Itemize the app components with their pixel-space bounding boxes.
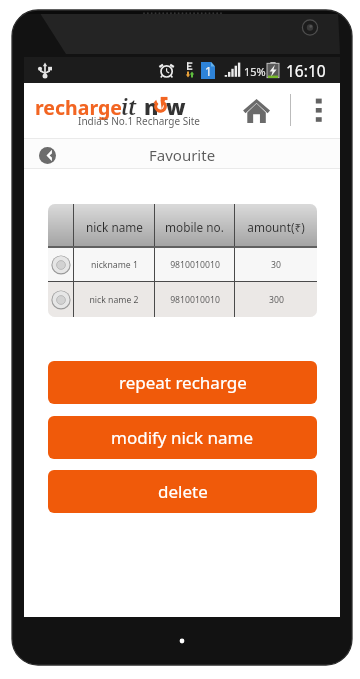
button[interactable]: modify nick name xyxy=(48,416,317,459)
staticText: n xyxy=(144,92,159,121)
staticText: modify nick name xyxy=(111,426,254,449)
staticText: 9810010010 xyxy=(170,294,220,306)
staticText: 1 xyxy=(205,63,212,79)
staticText: nick name xyxy=(86,219,143,235)
staticText: delete xyxy=(158,480,208,503)
button[interactable]: repeat recharge xyxy=(48,361,317,404)
staticText: amount(₹) xyxy=(247,219,305,235)
staticText: 30 xyxy=(271,259,281,271)
button[interactable]: delete xyxy=(48,470,317,513)
staticText: 300 xyxy=(269,294,284,306)
button[interactable]: nickname 1 xyxy=(48,248,317,281)
button[interactable]: More options xyxy=(304,91,334,129)
staticText: mobile no. xyxy=(165,219,224,235)
staticText: recharge xyxy=(35,94,122,121)
staticText: w xyxy=(166,92,186,121)
staticText: nick name 2 xyxy=(89,294,139,306)
button[interactable]: Home xyxy=(239,95,271,123)
button[interactable]: Back xyxy=(39,147,56,164)
staticText: it xyxy=(121,93,137,122)
button[interactable]: nick name 2 xyxy=(48,282,317,317)
staticText: 9810010010 xyxy=(170,259,220,271)
staticText: repeat recharge xyxy=(119,371,247,394)
staticText: India's No.1 Recharge Site xyxy=(78,114,200,128)
staticText: 15% xyxy=(244,64,266,79)
staticText: 16:10 xyxy=(286,60,326,81)
staticText: nickname 1 xyxy=(91,259,138,271)
staticText: Favourite xyxy=(149,145,216,165)
